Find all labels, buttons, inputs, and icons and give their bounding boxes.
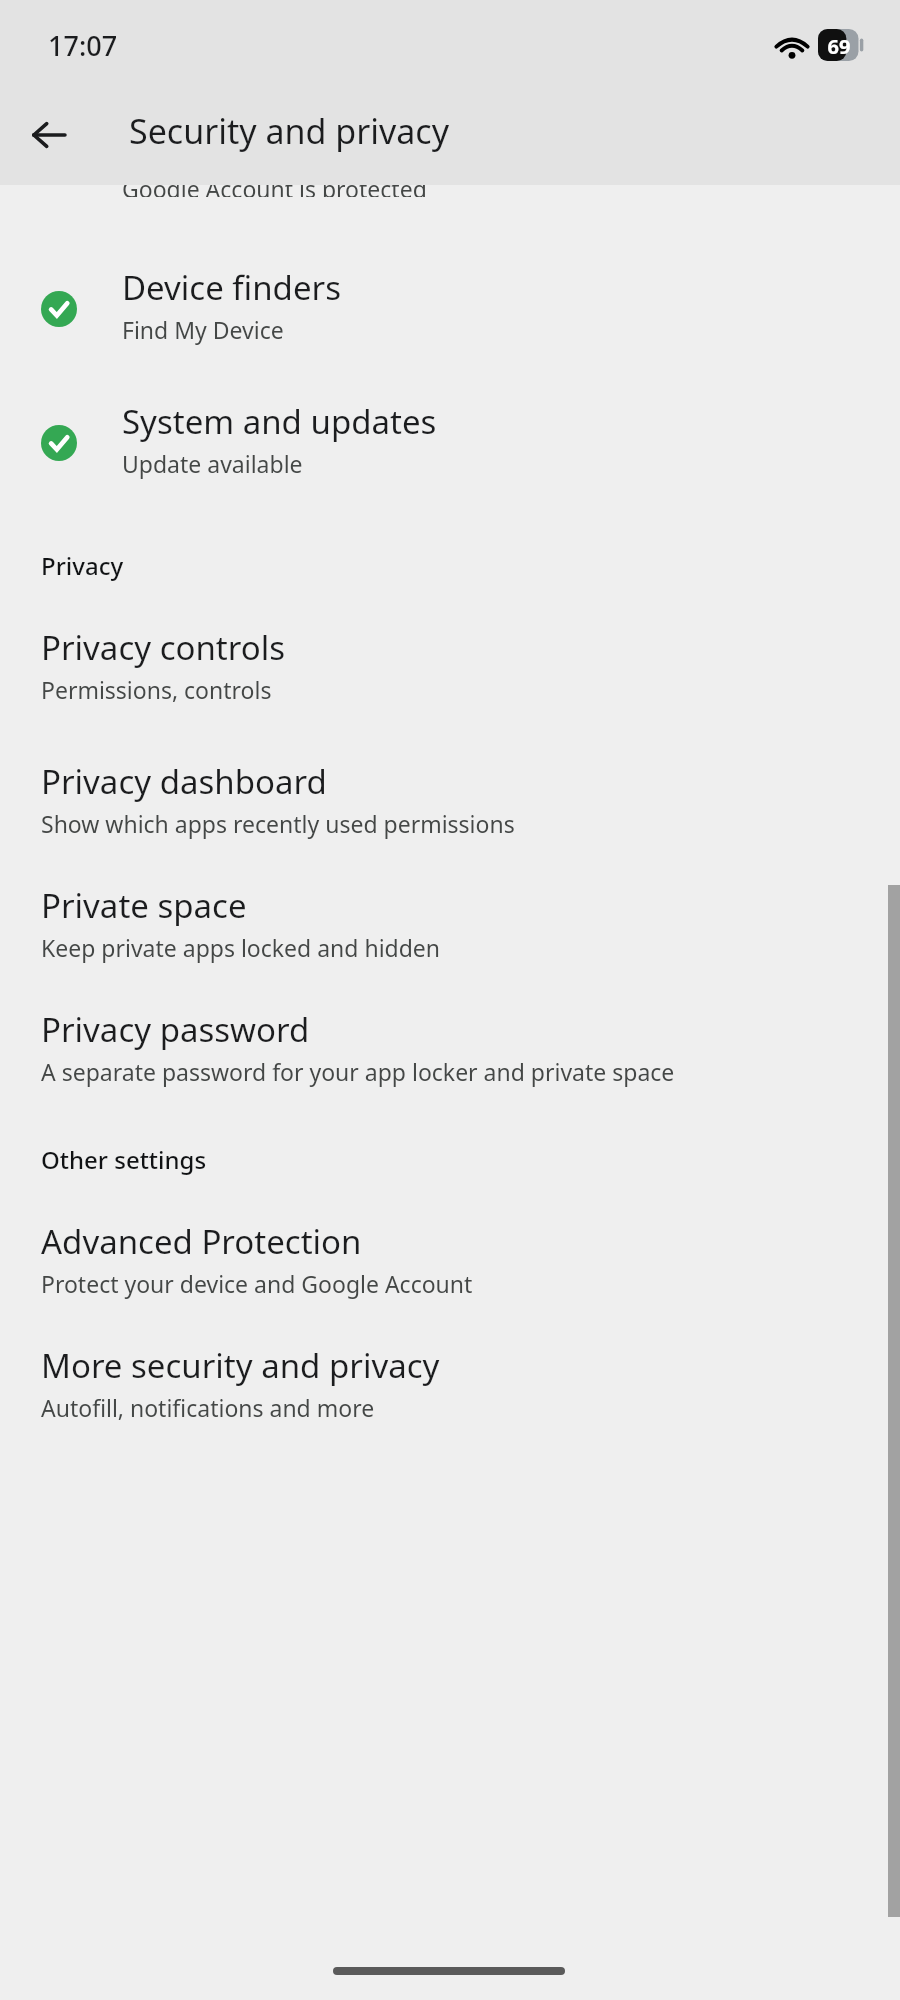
staticText: Other settings [41,1143,207,1176]
staticText: A separate password for your app locker … [41,1056,675,1087]
staticText: Protect your device and Google Account [41,1268,473,1299]
staticText: 17:07 [48,27,118,64]
staticText: Update available [122,448,303,479]
staticText: Keep private apps locked and hidden [41,932,441,963]
staticText: Advanced Protection [41,1219,362,1264]
button[interactable]: Privacy controls [0,621,900,713]
staticText: Device finders [122,265,341,310]
staticText: Show which apps recently used permission… [41,808,515,839]
button[interactable]: Back [18,104,80,166]
button[interactable]: Advanced Protection [0,1215,900,1307]
staticText: More security and privacy [41,1343,440,1388]
staticText: 69 [821,33,857,60]
staticText: Privacy password [41,1007,310,1052]
staticText: Privacy [41,549,124,582]
staticText: Google Account is protected [122,185,427,197]
staticText: Find My Device [122,314,284,345]
staticText: Privacy dashboard [41,759,327,804]
staticText: Privacy controls [41,625,286,670]
button[interactable]: System and updates [0,395,900,487]
button[interactable]: Privacy password [0,1003,900,1095]
staticText: Permissions, controls [41,674,272,705]
button[interactable]: Device finders [0,261,900,353]
staticText: System and updates [122,399,437,444]
staticText: Private space [41,883,247,928]
staticText: Security and privacy [129,108,450,154]
button[interactable]: Privacy dashboard [0,755,900,847]
staticText: Autofill, notifications and more [41,1392,375,1423]
button[interactable]: Private space [0,879,900,971]
button[interactable]: More security and privacy [0,1339,900,1431]
button[interactable]: Google Account is protected [0,185,900,209]
